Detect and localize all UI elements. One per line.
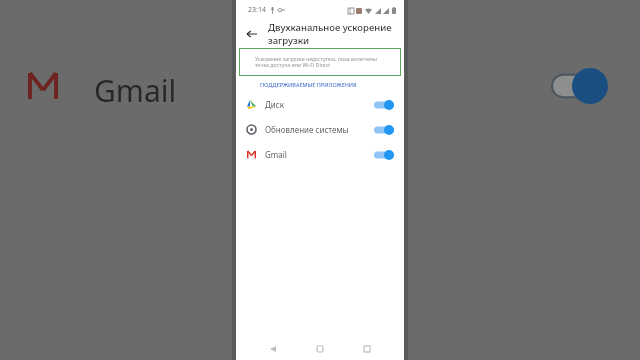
button[interactable]: Обновление системы [236,117,404,142]
button[interactable]: Переключатель Обновление системы [370,121,398,139]
staticText: Gmail [265,149,287,160]
staticText: Ускорение загрузки недоступно, пока вклю… [255,55,385,69]
button[interactable]: Главный экран [310,339,330,359]
button[interactable]: Переключатель Диск [370,96,398,114]
staticText: 23:14 [248,5,266,15]
staticText: Gmail [94,70,177,111]
button[interactable]: Gmail [236,142,404,167]
button[interactable]: Недавние приложения [357,339,377,359]
button[interactable]: Диск [236,92,404,117]
button[interactable]: Переключатель Gmail [370,146,398,164]
button[interactable]: Назад [263,339,283,359]
button[interactable]: Назад [242,24,262,44]
staticText: ПОДДЕРЖИВАЕМЫЕ ПРИЛОЖЕНИЯ [260,81,357,88]
staticText: Диск [265,99,284,110]
staticText: Двухканальное ускорение загрузки [268,21,404,47]
staticText: Обновление системы [265,124,349,135]
